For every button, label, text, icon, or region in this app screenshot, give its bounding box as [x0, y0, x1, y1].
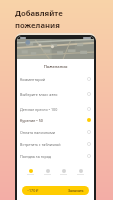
button[interactable]: Оплата наличными — [17, 127, 94, 137]
button[interactable]: Детское кресло • 100 — [17, 104, 94, 114]
staticText: Пожелания — [17, 64, 94, 70]
button[interactable]: Комментарий — [17, 74, 94, 84]
button[interactable]: Tab 3 — [60, 169, 67, 175]
staticText: Выберите класс авто — [20, 92, 87, 97]
button[interactable]: Tab 1 — [27, 169, 34, 175]
staticText: Оплата наличными — [20, 130, 87, 135]
button[interactable]: Встретить с табличкой — [17, 139, 94, 149]
button[interactable]: Tab 2 — [44, 169, 51, 175]
staticText: Поездка за город — [20, 154, 87, 159]
staticText: Комментарий — [20, 77, 87, 82]
button[interactable]: Курение • 50 — [17, 115, 94, 125]
staticText: Добавляйте пожелания — [15, 8, 63, 30]
button[interactable]: Выберите класс авто — [17, 89, 94, 99]
button[interactable]: Tab 4 — [77, 169, 84, 175]
staticText: ~170 ₽ — [27, 188, 39, 193]
staticText: Детское кресло • 100 — [20, 107, 87, 112]
staticText: Курение • 50 — [20, 118, 87, 123]
staticText: Заказать — [68, 188, 84, 193]
staticText: Встретить с табличкой — [20, 142, 87, 147]
button[interactable]: ~170 ₽ — [22, 186, 89, 195]
button[interactable]: Поездка за город — [17, 151, 94, 161]
